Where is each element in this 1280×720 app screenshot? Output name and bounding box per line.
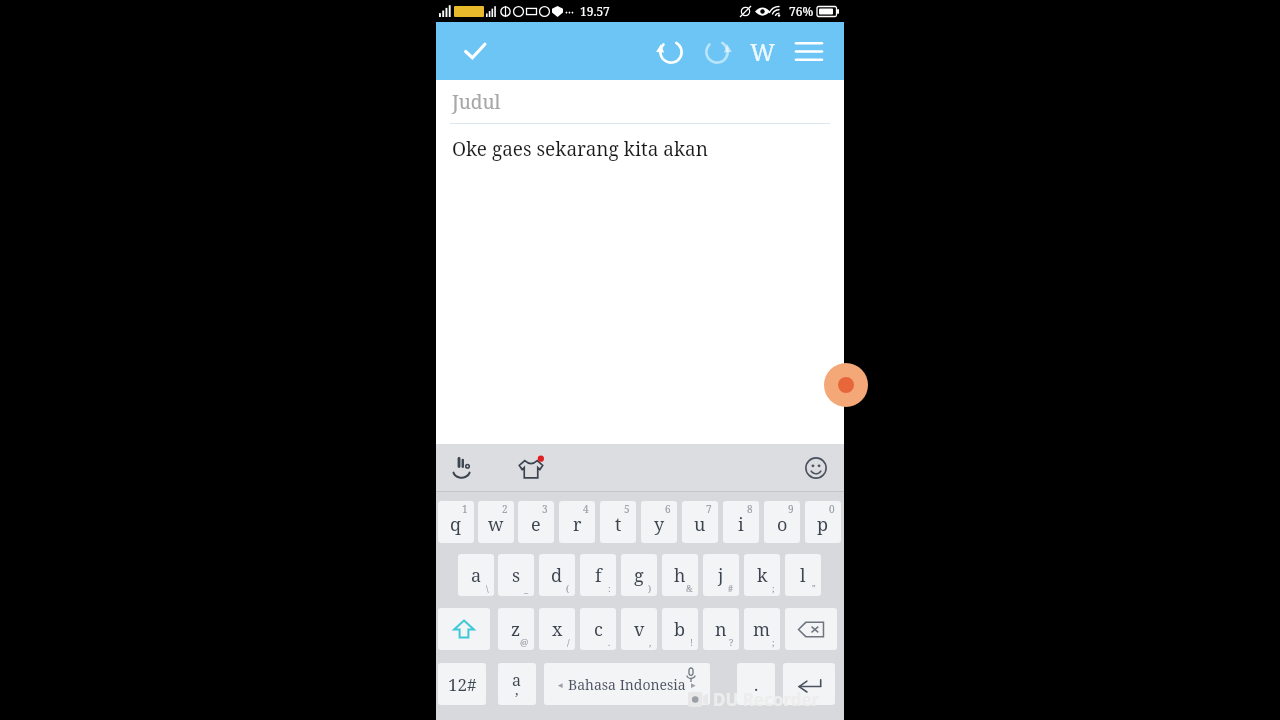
staticText: c xyxy=(594,617,603,642)
staticText: f xyxy=(595,563,602,588)
button[interactable]: Shift xyxy=(438,608,490,650)
button[interactable]: 9 xyxy=(764,501,800,543)
staticText: \ xyxy=(486,582,489,594)
button[interactable]: Enter xyxy=(783,663,835,705)
button[interactable]: x xyxy=(539,608,575,650)
button[interactable]: Oke gaes sekarang kita akan xyxy=(436,124,844,444)
button[interactable]: 1 xyxy=(438,501,474,543)
button[interactable]: a xyxy=(458,554,494,596)
staticText: ? xyxy=(729,636,734,648)
staticText: # xyxy=(728,582,734,594)
button[interactable]: b xyxy=(662,608,698,650)
button[interactable]: g xyxy=(621,554,657,596)
button[interactable]: 12# xyxy=(438,663,486,705)
staticText: s xyxy=(512,563,521,588)
button[interactable]: c xyxy=(580,608,616,650)
staticText: , xyxy=(649,636,652,648)
button[interactable]: l xyxy=(785,554,821,596)
staticText: 7 xyxy=(706,502,712,516)
staticText: 3 xyxy=(542,502,548,516)
staticText: v xyxy=(634,617,645,642)
staticText: ◂ xyxy=(558,680,563,690)
staticText: ▸ xyxy=(691,680,696,690)
button[interactable]: s xyxy=(498,554,534,596)
staticText: o xyxy=(777,512,788,537)
button[interactable]: Writer xyxy=(740,28,786,74)
button[interactable]: 5 xyxy=(600,501,636,543)
staticText: 2 xyxy=(502,502,508,516)
button[interactable]: ◂ xyxy=(544,663,710,705)
staticText: g xyxy=(634,563,644,588)
staticText: W xyxy=(750,35,776,68)
button[interactable]: Floating assistant xyxy=(824,363,868,407)
staticText: l xyxy=(800,563,806,588)
staticText: z xyxy=(511,617,521,642)
button[interactable]: m xyxy=(744,608,780,650)
staticText: p xyxy=(817,512,829,537)
staticText: e xyxy=(531,512,541,537)
button[interactable]: d xyxy=(539,554,575,596)
staticText: u xyxy=(694,512,706,537)
staticText: y xyxy=(654,512,665,537)
button[interactable]: Menu xyxy=(786,28,832,74)
button[interactable]: Handwriting xyxy=(442,448,482,488)
button[interactable]: n xyxy=(703,608,739,650)
button[interactable]: 3 xyxy=(518,501,554,543)
staticText: t xyxy=(615,512,622,537)
staticText: n xyxy=(715,617,727,642)
button[interactable]: z xyxy=(498,608,534,650)
button[interactable]: v xyxy=(621,608,657,650)
staticText: 76% xyxy=(789,3,814,19)
staticText: 8 xyxy=(747,502,753,516)
button[interactable]: h xyxy=(662,554,698,596)
staticText: ··· xyxy=(565,4,574,19)
staticText: DU Recorder xyxy=(713,688,820,711)
button[interactable]: 8 xyxy=(723,501,759,543)
staticText: 9 xyxy=(788,502,794,516)
button[interactable]: 0 xyxy=(805,501,841,543)
staticText: k xyxy=(757,563,768,588)
button[interactable]: Undo xyxy=(648,28,694,74)
staticText: ) xyxy=(648,582,652,594)
staticText: . xyxy=(754,673,759,696)
staticText: @ xyxy=(520,636,529,648)
staticText: q xyxy=(450,512,462,537)
button[interactable]: f xyxy=(580,554,616,596)
staticText: : xyxy=(608,582,611,594)
button[interactable]: a xyxy=(498,663,536,705)
staticText: ; xyxy=(772,636,775,648)
button[interactable]: Judul xyxy=(436,80,844,123)
staticText: ; xyxy=(772,582,775,594)
staticText: 5 xyxy=(624,502,630,516)
other: Enter xyxy=(796,676,822,693)
staticText: i xyxy=(738,512,744,537)
button[interactable]: Backspace xyxy=(785,608,837,650)
staticText: Bahasa Indonesia xyxy=(568,675,686,694)
staticText: / xyxy=(567,636,570,648)
staticText: 19.57 xyxy=(580,3,610,19)
button[interactable]: . xyxy=(737,663,775,705)
staticText: b xyxy=(674,617,686,642)
staticText: w xyxy=(488,512,504,537)
staticText: . xyxy=(608,636,611,648)
button[interactable]: k xyxy=(744,554,780,596)
button[interactable]: Redo xyxy=(694,28,740,74)
button[interactable]: Theme xyxy=(510,447,552,489)
button[interactable]: 2 xyxy=(478,501,514,543)
staticText: 4 xyxy=(583,502,589,516)
other: Backspace xyxy=(798,621,824,638)
button[interactable]: j xyxy=(703,554,739,596)
staticText: Judul xyxy=(452,89,501,115)
button[interactable]: 4 xyxy=(559,501,595,543)
staticText: Oke gaes sekarang kita akan xyxy=(452,136,709,162)
button[interactable]: 7 xyxy=(682,501,718,543)
staticText: 0 xyxy=(829,502,835,516)
button[interactable]: 6 xyxy=(641,501,677,543)
staticText: 12# xyxy=(448,673,477,696)
staticText: _ xyxy=(524,582,529,594)
staticText: d xyxy=(551,563,563,588)
staticText: " xyxy=(812,582,816,594)
staticText: & xyxy=(686,582,693,594)
button[interactable]: Emoji xyxy=(796,448,836,488)
button[interactable]: Save xyxy=(454,30,496,72)
